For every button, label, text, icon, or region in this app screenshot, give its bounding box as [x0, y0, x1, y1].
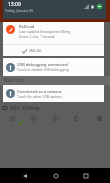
staticText: 13:09	[8, 1, 21, 8]
staticText: ASA 100mg	[10, 104, 40, 111]
button[interactable]: USB debugging connected	[3, 58, 104, 76]
staticText: Connected as a camera	[17, 89, 62, 94]
button[interactable]: Connected as a camera	[3, 85, 104, 102]
staticText: RxDroid	[19, 24, 35, 29]
staticText: RxDroid	[4, 77, 24, 84]
staticText: Low supplies Enoxaparine 80mg	[19, 29, 71, 34]
staticText: Touch to disable USB debugging	[17, 67, 69, 72]
staticText: Touch for other USB options	[17, 94, 62, 99]
staticText: Friday, January 30	[5, 8, 34, 13]
staticText: Doses 2 due, 1 missed	[19, 34, 55, 39]
button[interactable]: TAKE ALL	[3, 45, 104, 57]
staticText: USB debugging connected	[17, 62, 68, 67]
button[interactable]: Recents	[79, 169, 92, 182]
button[interactable]: Back	[18, 169, 31, 182]
staticText: TAKE ALL	[29, 49, 42, 53]
button[interactable]: RxDroid	[3, 22, 104, 56]
button[interactable]: Home	[49, 169, 62, 182]
